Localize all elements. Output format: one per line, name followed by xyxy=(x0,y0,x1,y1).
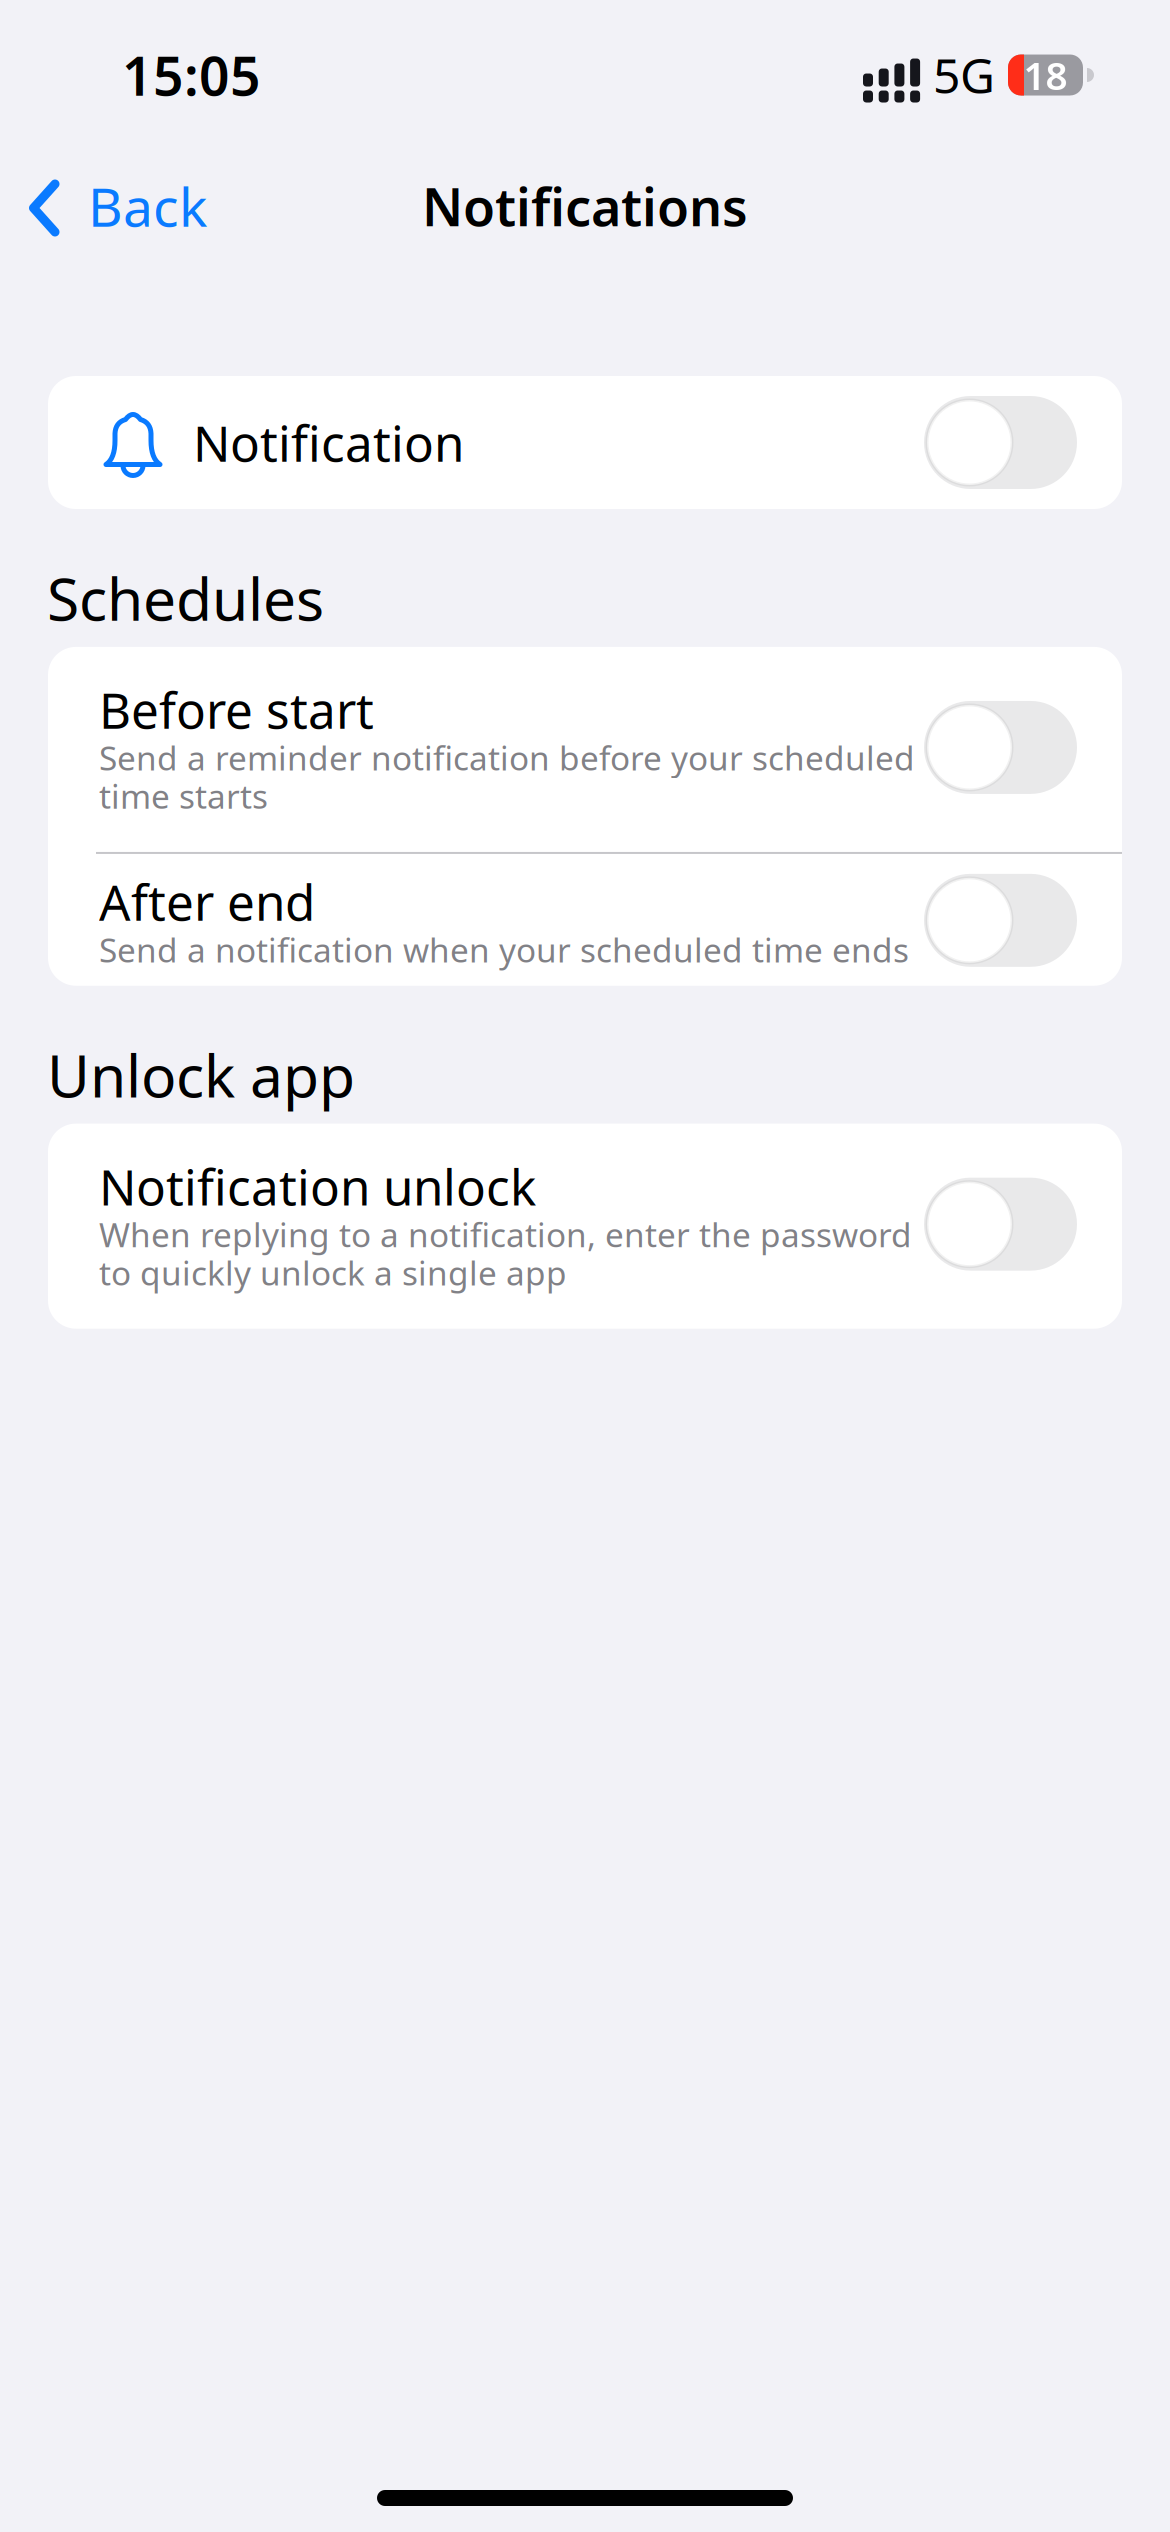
staticText: Send a reminder notification before your… xyxy=(99,735,915,818)
staticText: 15:05 xyxy=(122,40,261,110)
staticText: After end xyxy=(99,869,315,934)
button[interactable]: Notification xyxy=(48,376,1122,509)
staticText: Notifications xyxy=(422,171,748,241)
button[interactable]: After end xyxy=(48,854,1122,986)
staticText: When replying to a notification, enter t… xyxy=(99,1212,912,1295)
button[interactable]: Notification unlock xyxy=(924,1178,1077,1271)
button[interactable]: Notification unlock xyxy=(48,1124,1122,1329)
staticText: 5G xyxy=(933,43,995,107)
staticText: 18 xyxy=(1023,49,1067,101)
staticText: Unlock app xyxy=(47,1036,355,1114)
staticText: Back xyxy=(88,171,207,241)
button[interactable]: Back xyxy=(0,157,227,255)
button[interactable]: Before start xyxy=(924,701,1077,794)
button[interactable]: Notification xyxy=(924,396,1077,489)
staticText: Notification xyxy=(193,410,464,475)
staticText: Before start xyxy=(99,677,374,742)
button[interactable]: Before start xyxy=(48,647,1122,852)
staticText: Schedules xyxy=(47,559,324,637)
staticText: Notification unlock xyxy=(99,1154,536,1219)
button[interactable]: After end xyxy=(924,874,1077,967)
staticText: Send a notification when your scheduled … xyxy=(99,927,909,972)
